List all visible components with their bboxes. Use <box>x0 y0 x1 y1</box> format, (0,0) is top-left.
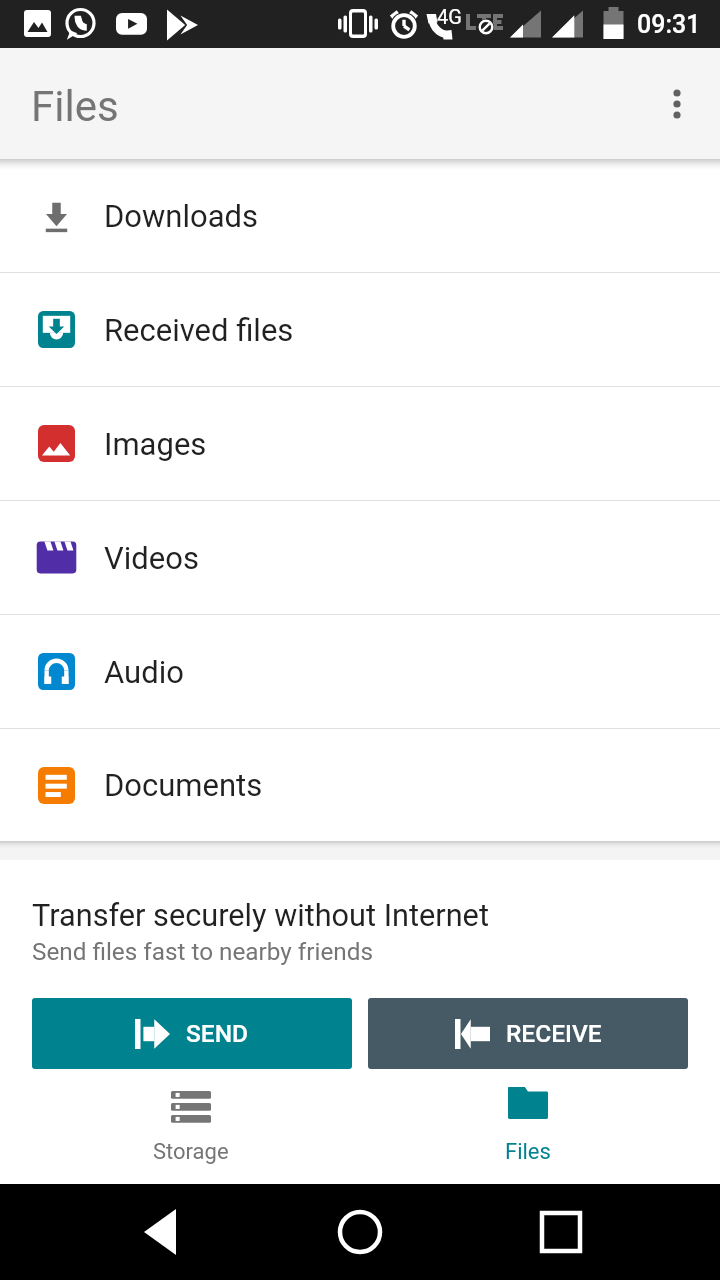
staticText: 09:31 <box>637 10 701 39</box>
staticText: Downloads <box>104 198 259 234</box>
staticText: Files <box>505 1139 551 1165</box>
button[interactable]: Files <box>448 1070 608 1184</box>
staticText: Files <box>31 82 119 131</box>
staticText: SEND <box>186 1019 249 1048</box>
staticText: Send files fast to nearby friends <box>32 937 373 965</box>
button[interactable]: RECEIVE <box>368 998 688 1069</box>
staticText: Received files <box>104 312 294 348</box>
staticText: Audio <box>104 654 184 690</box>
button[interactable]: SEND <box>32 998 352 1069</box>
staticText: Storage <box>153 1139 229 1165</box>
staticText: 4G <box>437 5 462 28</box>
button[interactable]: Documents <box>0 729 720 841</box>
button[interactable]: Received files <box>0 273 720 386</box>
button[interactable]: Storage <box>111 1070 271 1184</box>
staticText: Transfer securely without Internet <box>32 898 489 934</box>
staticText: RECEIVE <box>506 1019 602 1048</box>
button[interactable]: Videos <box>0 501 720 614</box>
button[interactable]: Downloads <box>0 159 720 272</box>
button[interactable]: Images <box>0 387 720 500</box>
staticText: Documents <box>104 767 263 803</box>
staticText: Images <box>104 426 207 462</box>
staticText: Videos <box>104 540 199 576</box>
button[interactable]: Audio <box>0 615 720 728</box>
button[interactable]: More options <box>648 75 706 133</box>
